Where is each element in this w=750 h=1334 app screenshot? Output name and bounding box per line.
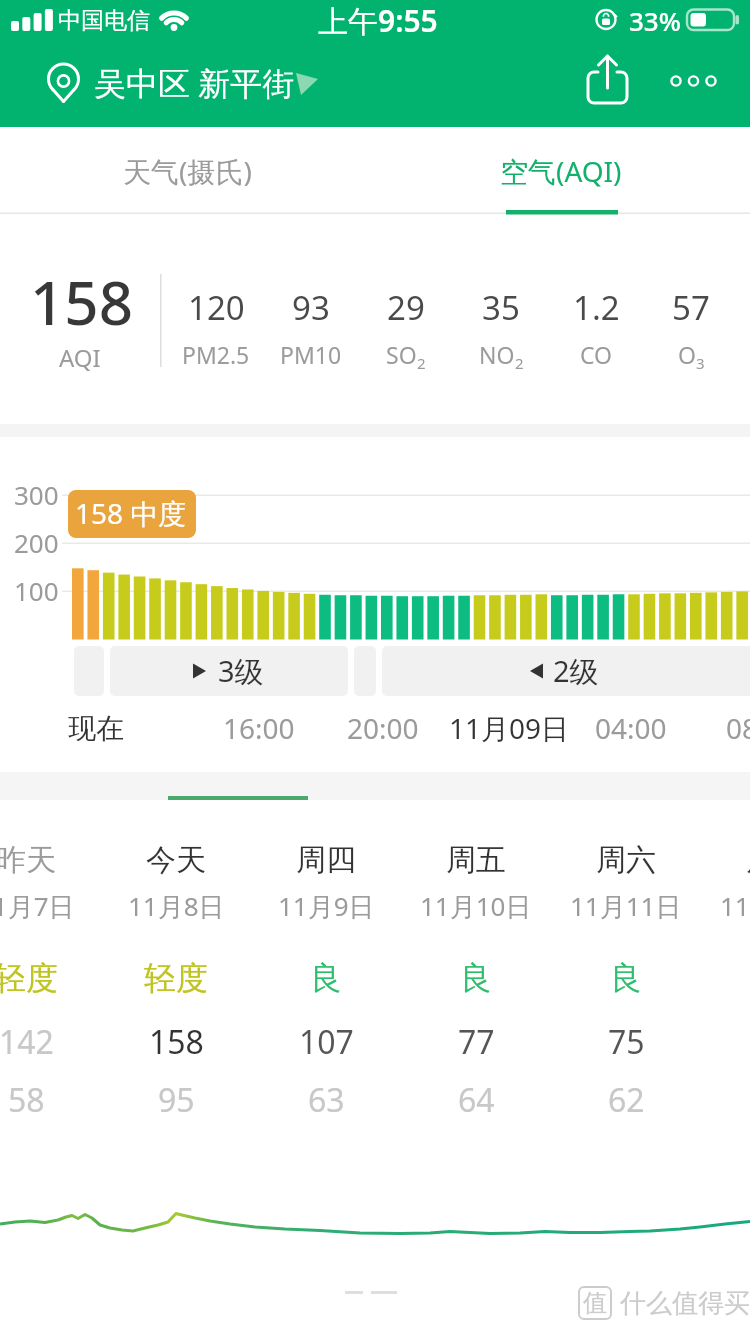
staticText: 20:00 bbox=[347, 709, 419, 747]
staticText: 95 bbox=[158, 1078, 195, 1122]
staticText: NO bbox=[479, 339, 515, 370]
button[interactable] bbox=[660, 56, 730, 106]
staticText: 57 bbox=[672, 285, 710, 330]
staticText: 300 bbox=[14, 477, 59, 512]
staticText: 昨天 bbox=[0, 841, 56, 879]
staticText: 75 bbox=[608, 1020, 645, 1064]
staticText: 08:0 bbox=[726, 709, 750, 747]
staticText: 100 bbox=[14, 573, 59, 608]
staticText: PM2.5 bbox=[182, 339, 250, 370]
staticText: 11月8日 bbox=[128, 888, 225, 924]
staticText: 11月11日 bbox=[570, 888, 682, 924]
staticText: 2 bbox=[417, 353, 426, 373]
staticText: 93 bbox=[292, 285, 330, 330]
staticText: 轻度 bbox=[0, 958, 58, 998]
staticText: 142 bbox=[0, 1020, 54, 1064]
staticText: 良 bbox=[310, 958, 342, 998]
staticText: 周日 bbox=[746, 841, 750, 879]
staticText: CO bbox=[580, 339, 613, 370]
staticText: PM10 bbox=[280, 339, 342, 370]
staticText: 周六 bbox=[596, 841, 656, 879]
staticText: 158 中度 bbox=[75, 494, 187, 532]
staticText: AQI bbox=[59, 341, 101, 374]
staticText: 04:00 bbox=[595, 709, 667, 747]
staticText: 200 bbox=[14, 525, 59, 560]
staticText: 周五 bbox=[446, 841, 506, 879]
staticText: 良 bbox=[610, 958, 642, 998]
staticText: 空气(AQI) bbox=[500, 152, 622, 190]
staticText: 天气(摄氏) bbox=[123, 152, 252, 190]
staticText: 64 bbox=[458, 1078, 495, 1122]
button[interactable]: 天气(摄氏) bbox=[0, 131, 387, 211]
staticText: 11月10日 bbox=[420, 888, 532, 924]
staticText: 16:00 bbox=[223, 709, 295, 747]
staticText: 33% bbox=[629, 3, 681, 38]
staticText: 3 bbox=[696, 353, 705, 373]
staticText: 158 bbox=[30, 261, 133, 341]
staticText: 11月9日 bbox=[278, 888, 375, 924]
staticText: 11月12日 bbox=[720, 888, 750, 924]
staticText: 11月09日 bbox=[449, 709, 570, 747]
staticText: 11月7日 bbox=[0, 888, 75, 924]
staticText: 1.2 bbox=[573, 285, 620, 330]
staticText: 35 bbox=[482, 285, 520, 330]
staticText: 3级 bbox=[218, 651, 264, 691]
staticText: 2级 bbox=[553, 651, 599, 691]
staticText: 58 bbox=[8, 1078, 45, 1122]
button[interactable] bbox=[40, 58, 320, 108]
staticText: 中国电信 bbox=[58, 6, 150, 35]
staticText: 120 bbox=[188, 285, 245, 330]
button[interactable] bbox=[578, 52, 638, 112]
button[interactable]: 空气(AQI) bbox=[361, 131, 750, 211]
staticText: 29 bbox=[387, 285, 425, 330]
staticText: 158 bbox=[149, 1020, 204, 1064]
staticText: 上午9:55 bbox=[318, 0, 438, 41]
staticText: 2 bbox=[515, 353, 524, 373]
staticText: 77 bbox=[458, 1020, 495, 1064]
staticText: O bbox=[678, 339, 696, 370]
staticText: 今天 bbox=[146, 841, 206, 879]
staticText: 周四 bbox=[296, 841, 356, 879]
staticText: 107 bbox=[299, 1020, 354, 1064]
staticText: SO bbox=[386, 339, 417, 370]
staticText: 良 bbox=[460, 958, 492, 998]
staticText: 63 bbox=[308, 1078, 345, 1122]
staticText: 什么值得买 bbox=[620, 1287, 750, 1320]
staticText: 62 bbox=[608, 1078, 645, 1122]
staticText: 轻度 bbox=[144, 958, 208, 998]
staticText: 吴中区 新平街 bbox=[94, 61, 295, 105]
staticText: 现在 bbox=[68, 711, 124, 746]
staticText: 值 bbox=[583, 1288, 607, 1318]
